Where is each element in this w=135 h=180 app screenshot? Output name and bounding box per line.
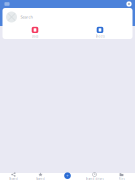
button[interactable]: Shared drives — [81, 172, 108, 180]
button[interactable]: Account — [125, 0, 132, 8]
staticText: Starred — [36, 177, 45, 180]
button[interactable]: Sheets — [67, 27, 132, 38]
staticText: Docs — [32, 35, 38, 38]
staticText: Sheets — [95, 35, 104, 38]
button[interactable]: Files — [108, 172, 135, 180]
button[interactable]: Docs — [2, 27, 67, 38]
button[interactable]: Create — [54, 172, 81, 179]
button[interactable]: Search — [2, 8, 132, 26]
button[interactable]: Menu — [2, 0, 11, 8]
button[interactable]: Shared — [0, 172, 27, 180]
staticText: Files — [118, 177, 124, 180]
staticText: Shared drives — [85, 177, 103, 180]
staticText: Shared — [9, 177, 18, 180]
button[interactable]: Starred — [27, 172, 54, 180]
staticText: Search — [20, 14, 32, 20]
